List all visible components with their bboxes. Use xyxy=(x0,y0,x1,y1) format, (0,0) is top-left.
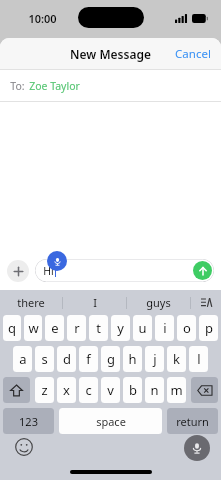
staticText: s xyxy=(41,350,48,368)
button[interactable]: g xyxy=(101,346,120,372)
button[interactable]: Add attachment xyxy=(7,260,29,282)
button[interactable]: space xyxy=(59,408,162,434)
button[interactable]: Formatting xyxy=(191,290,221,315)
staticText: u xyxy=(138,319,147,337)
staticText: I xyxy=(93,295,97,310)
staticText: Hi xyxy=(43,264,54,278)
button[interactable]: n xyxy=(145,377,164,403)
staticText: guys xyxy=(146,295,171,310)
button[interactable]: u xyxy=(133,315,152,341)
staticText: w xyxy=(28,319,39,337)
staticText: b xyxy=(129,381,137,399)
staticText: o xyxy=(183,319,191,337)
staticText: x xyxy=(63,381,70,399)
button[interactable]: c xyxy=(79,377,98,403)
button[interactable]: t xyxy=(89,315,108,341)
staticText: i xyxy=(163,319,167,337)
button[interactable]: e xyxy=(45,315,64,341)
button[interactable]: o xyxy=(177,315,196,341)
staticText: n xyxy=(150,381,159,399)
button[interactable]: Send xyxy=(193,261,212,280)
button[interactable]: i xyxy=(155,315,174,341)
staticText: r xyxy=(74,319,80,337)
button[interactable]: d xyxy=(57,346,76,372)
button[interactable]: j xyxy=(145,346,164,372)
button[interactable]: p xyxy=(199,315,218,341)
staticText: Cancel xyxy=(175,46,211,62)
staticText: t xyxy=(96,319,101,337)
staticText: New Message xyxy=(70,46,151,62)
staticText: return xyxy=(176,414,209,429)
staticText: d xyxy=(63,350,71,368)
staticText: 10:00 xyxy=(28,11,57,26)
button[interactable]: l xyxy=(189,346,208,372)
staticText: h xyxy=(128,350,137,368)
staticText: y xyxy=(117,319,124,337)
staticText: there xyxy=(17,295,45,310)
staticText: 123 xyxy=(19,414,38,429)
button[interactable]: return xyxy=(167,408,218,434)
staticText: q xyxy=(8,319,16,337)
staticText: c xyxy=(85,381,92,399)
staticText: p xyxy=(205,319,213,337)
button[interactable]: w xyxy=(24,315,42,341)
button[interactable]: y xyxy=(111,315,130,341)
staticText: j xyxy=(153,350,157,368)
button[interactable]: a xyxy=(13,346,32,372)
button[interactable]: 123 xyxy=(3,408,54,434)
button[interactable]: Shift xyxy=(3,377,30,403)
button[interactable]: To: xyxy=(0,70,221,101)
button[interactable]: x xyxy=(57,377,76,403)
button[interactable]: m xyxy=(167,377,186,403)
button[interactable]: Cancel xyxy=(165,40,221,68)
button[interactable]: v xyxy=(101,377,120,403)
button[interactable]: Hi xyxy=(35,259,214,282)
staticText: g xyxy=(107,350,115,368)
button[interactable]: h xyxy=(123,346,142,372)
staticText: f xyxy=(86,350,91,368)
staticText: space xyxy=(96,414,126,429)
button[interactable]: b xyxy=(123,377,142,403)
staticText: v xyxy=(107,381,114,399)
button[interactable]: Backspace xyxy=(191,377,218,403)
button[interactable]: there xyxy=(0,290,62,315)
button[interactable]: f xyxy=(79,346,98,372)
button[interactable]: r xyxy=(67,315,86,341)
staticText: a xyxy=(19,350,27,368)
button[interactable]: q xyxy=(3,315,21,341)
button[interactable]: guys xyxy=(127,290,190,315)
button[interactable]: k xyxy=(167,346,186,372)
button[interactable]: Emoji xyxy=(15,438,33,456)
button[interactable]: Voice input xyxy=(184,435,210,461)
button[interactable]: s xyxy=(35,346,54,372)
button[interactable]: Dictate xyxy=(47,251,67,271)
staticText: e xyxy=(51,319,59,337)
staticText: z xyxy=(41,381,48,399)
staticText: l xyxy=(197,350,201,368)
button[interactable]: z xyxy=(35,377,54,403)
staticText: Zoe Taylor xyxy=(29,79,80,93)
staticText: k xyxy=(173,350,180,368)
staticText: m xyxy=(170,381,183,399)
button[interactable]: I xyxy=(63,290,126,315)
staticText: To: xyxy=(10,79,25,93)
